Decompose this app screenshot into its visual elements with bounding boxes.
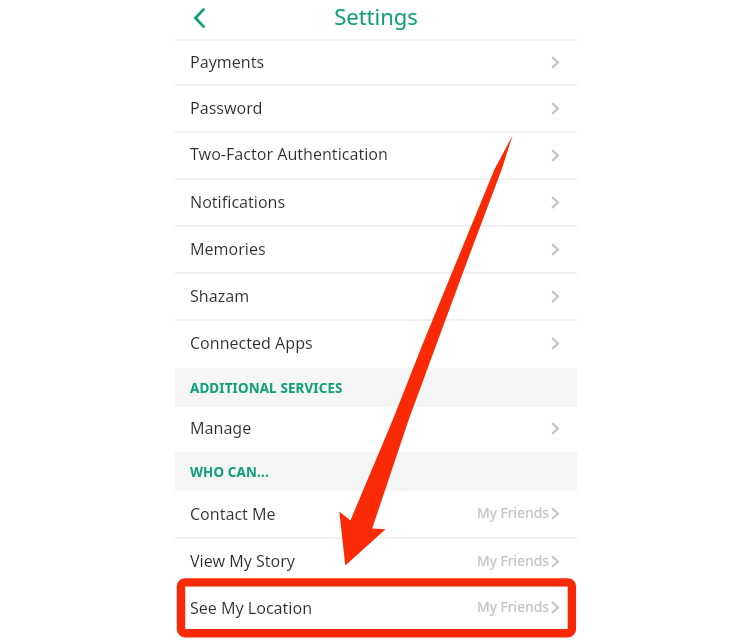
staticText: View My Story (190, 550, 296, 572)
button[interactable]: View My Story (175, 539, 577, 587)
button[interactable]: Manage (175, 407, 577, 452)
staticText: Two-Factor Authentication (190, 143, 388, 165)
staticText: WHO CAN... (190, 463, 269, 481)
button[interactable]: Back (184, 3, 214, 33)
staticText: Password (190, 97, 263, 119)
staticText: Shazam (190, 285, 250, 307)
button[interactable]: Payments (175, 41, 577, 86)
staticText: Memories (190, 238, 266, 260)
staticText: ADDITIONAL SERVICES (190, 379, 343, 397)
button[interactable]: Shazam (175, 274, 577, 321)
staticText: Payments (190, 51, 265, 73)
staticText: My Friends (477, 597, 550, 616)
button[interactable]: Memories (175, 227, 577, 274)
button[interactable]: Notifications (175, 180, 577, 227)
button[interactable]: Two-Factor Authentication (175, 132, 577, 180)
staticText: Contact Me (190, 503, 276, 525)
button[interactable]: Connected Apps (175, 321, 577, 368)
staticText: Connected Apps (190, 332, 313, 354)
button[interactable]: Contact Me (175, 492, 577, 539)
staticText: My Friends (477, 503, 550, 522)
staticText: My Friends (477, 551, 550, 570)
staticText: See My Location (190, 597, 313, 619)
staticText: Notifications (190, 191, 286, 213)
button[interactable]: See My Location (175, 585, 577, 634)
staticText: Manage (190, 417, 252, 439)
staticText: Settings (334, 1, 418, 31)
button[interactable]: Password (175, 86, 577, 133)
